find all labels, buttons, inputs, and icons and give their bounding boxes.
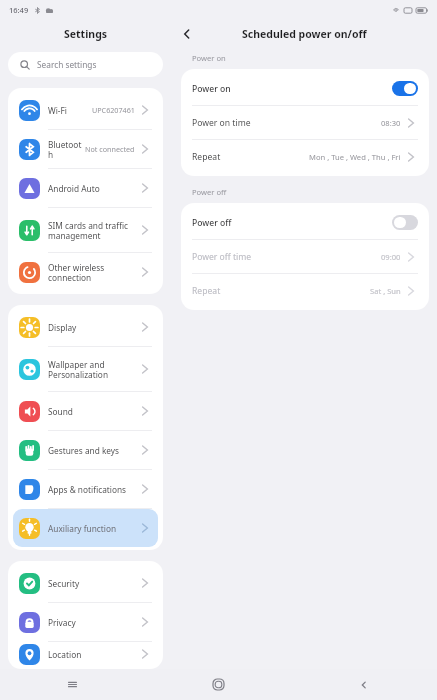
button[interactable]: Gestures and keys — [13, 431, 158, 469]
staticText: Display — [48, 322, 140, 333]
button[interactable]: Auxiliary function — [13, 509, 158, 547]
button[interactable]: Display — [13, 308, 158, 346]
button[interactable] — [392, 81, 418, 96]
button[interactable]: Location — [13, 642, 158, 666]
staticText: 08:30 — [381, 118, 401, 128]
staticText: Power off — [192, 187, 227, 197]
button[interactable]: Recents — [0, 669, 145, 700]
staticText: Gestures and keys — [48, 445, 140, 456]
button[interactable]: Android Auto — [13, 169, 158, 207]
button[interactable]: SIM cards and traffic management — [13, 208, 158, 252]
staticText: Power off time — [192, 251, 381, 263]
button[interactable]: Home — [145, 669, 291, 700]
staticText: Scheduled power on/off — [242, 27, 367, 41]
staticText: Repeat — [192, 285, 370, 297]
button[interactable]: Power on time — [181, 106, 429, 139]
staticText: Bluetooth — [48, 139, 85, 160]
button[interactable]: Repeat — [181, 274, 429, 307]
staticText: UPC6207461 — [92, 105, 135, 115]
button[interactable]: Wallpaper and Personalization — [13, 347, 158, 391]
button[interactable]: Wi-Fi — [13, 91, 158, 129]
staticText: Mon , Tue , Wed , Thu , Fri — [309, 152, 401, 162]
button[interactable]: Repeat — [181, 140, 429, 173]
staticText: 09:00 — [381, 252, 401, 262]
button[interactable]: Bluetooth — [13, 130, 158, 168]
button[interactable]: Power off time — [181, 240, 429, 273]
staticText: Repeat — [192, 151, 309, 163]
staticText: Auxiliary function — [48, 523, 140, 534]
button[interactable]: Power off — [181, 206, 429, 239]
staticText: Sat , Sun — [370, 286, 401, 296]
staticText: Wi-Fi — [48, 105, 92, 116]
button[interactable] — [392, 215, 418, 230]
button[interactable]: Sound — [13, 392, 158, 430]
staticText: Power on — [192, 83, 392, 95]
button[interactable]: Power on — [181, 72, 429, 105]
staticText: Power on — [192, 53, 226, 63]
button[interactable]: Other wireless connection — [13, 253, 158, 291]
staticText: Android Auto — [48, 183, 140, 194]
button[interactable]: Back — [172, 20, 202, 48]
button[interactable]: Search settings — [8, 52, 163, 77]
staticText: Power off — [192, 217, 392, 229]
staticText: Other wireless connection — [48, 262, 140, 283]
button[interactable]: Back — [291, 669, 437, 700]
staticText: Wallpaper and Personalization — [48, 359, 140, 380]
staticText: SIM cards and traffic management — [48, 220, 140, 241]
staticText: Security — [48, 578, 140, 589]
staticText: Sound — [48, 406, 140, 417]
staticText: Settings — [64, 27, 108, 41]
staticText: Privacy — [48, 617, 140, 628]
staticText: 16:49 — [9, 5, 29, 15]
button[interactable]: Apps & notifications — [13, 470, 158, 508]
staticText: Search settings — [37, 59, 97, 70]
staticText: Not connected — [85, 144, 135, 154]
button[interactable]: Privacy — [13, 603, 158, 641]
staticText: Apps & notifications — [48, 484, 140, 495]
staticText: Power on time — [192, 117, 381, 129]
staticText: Location — [48, 649, 140, 660]
button[interactable]: Security — [13, 564, 158, 602]
